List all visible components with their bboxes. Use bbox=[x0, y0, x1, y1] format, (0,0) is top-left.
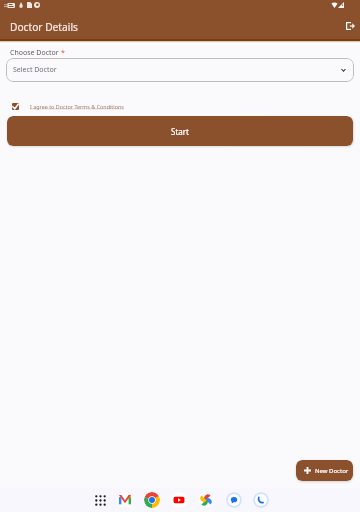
staticText: * bbox=[61, 48, 65, 58]
button[interactable]: Start bbox=[7, 116, 353, 146]
button[interactable]: Logout bbox=[341, 17, 359, 35]
button[interactable]: Gmail bbox=[117, 492, 133, 508]
staticText: Doctor Details bbox=[10, 20, 78, 34]
staticText: Start bbox=[171, 126, 189, 137]
button[interactable]: I agree to Doctor Terms & Conditions bbox=[12, 99, 124, 113]
button[interactable]: Select Doctor bbox=[6, 58, 354, 82]
button[interactable]: YouTube bbox=[171, 492, 187, 508]
button[interactable]: Photos bbox=[198, 492, 214, 508]
staticText: I agree to Doctor Terms & Conditions bbox=[30, 103, 124, 110]
button[interactable]: Phone bbox=[253, 492, 269, 508]
staticText: Select Doctor bbox=[13, 65, 57, 75]
button[interactable]: Messages bbox=[226, 492, 242, 508]
button[interactable]: Chrome bbox=[144, 492, 160, 508]
button[interactable]: New Doctor bbox=[296, 460, 353, 481]
staticText: New Doctor bbox=[315, 467, 349, 475]
button[interactable]: All apps bbox=[93, 493, 107, 507]
staticText: Choose Doctor bbox=[10, 48, 59, 58]
